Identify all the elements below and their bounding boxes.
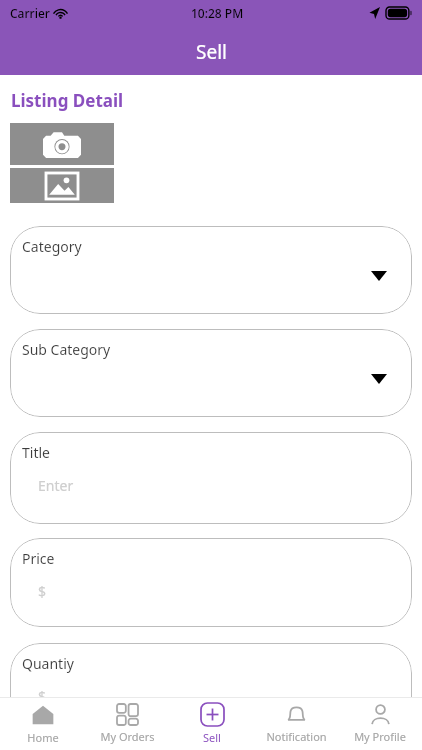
button[interactable]: My Profile xyxy=(338,698,422,750)
button[interactable]: Title xyxy=(10,432,412,524)
staticText: 10:28 PM xyxy=(191,5,244,21)
button[interactable]: Choose image xyxy=(10,168,114,203)
staticText: Title xyxy=(22,443,50,462)
staticText: Sell xyxy=(203,730,221,745)
button[interactable]: Sell xyxy=(170,698,254,750)
staticText: Listing Detail xyxy=(11,89,124,112)
button[interactable]: Home xyxy=(0,698,85,750)
staticText: Carrier xyxy=(10,5,50,21)
staticText: $ xyxy=(38,582,47,601)
button[interactable]: Notification xyxy=(254,698,338,750)
staticText: $ xyxy=(38,687,47,706)
staticText: Quantiy xyxy=(22,654,74,673)
staticText: Home xyxy=(27,730,59,745)
staticText: My Orders xyxy=(100,729,155,744)
button[interactable]: Price xyxy=(10,538,412,627)
staticText: Sell xyxy=(196,39,227,65)
staticText: My Profile xyxy=(354,729,406,744)
staticText: Enter xyxy=(38,476,74,495)
staticText: Price xyxy=(22,549,55,568)
button[interactable]: Sub Category xyxy=(10,329,412,417)
button[interactable]: Quantiy xyxy=(10,643,412,732)
button[interactable]: My Orders xyxy=(85,698,170,750)
button[interactable]: Category xyxy=(10,226,412,314)
staticText: Notification xyxy=(266,729,327,744)
button[interactable]: Take photo xyxy=(10,123,114,165)
staticText: Category xyxy=(22,237,82,256)
staticText: Sub Category xyxy=(22,340,111,359)
